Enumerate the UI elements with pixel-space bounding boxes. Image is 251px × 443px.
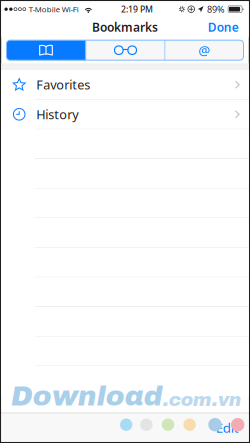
button[interactable]: Bookmarks (6, 40, 85, 60)
staticText: Download (11, 381, 163, 411)
button[interactable]: Shared Links (165, 40, 243, 60)
staticText: .com.vn (163, 390, 241, 410)
button[interactable]: History (1, 100, 249, 129)
staticText: Favorites (36, 76, 90, 93)
staticText: Edit (216, 419, 239, 436)
button[interactable]: Reading List (86, 40, 164, 60)
button[interactable]: Edit (211, 413, 244, 442)
staticText: 2:19 PM (121, 3, 153, 15)
button[interactable]: Done (203, 15, 244, 39)
staticText: 89% (207, 3, 225, 15)
staticText: Done (208, 19, 239, 35)
staticText: @ (198, 41, 210, 59)
staticText: Bookmarks (92, 19, 158, 35)
staticText: History (36, 106, 78, 123)
staticText: T-Mobile Wi-Fi (29, 4, 79, 14)
button[interactable]: Favorites (1, 70, 249, 99)
